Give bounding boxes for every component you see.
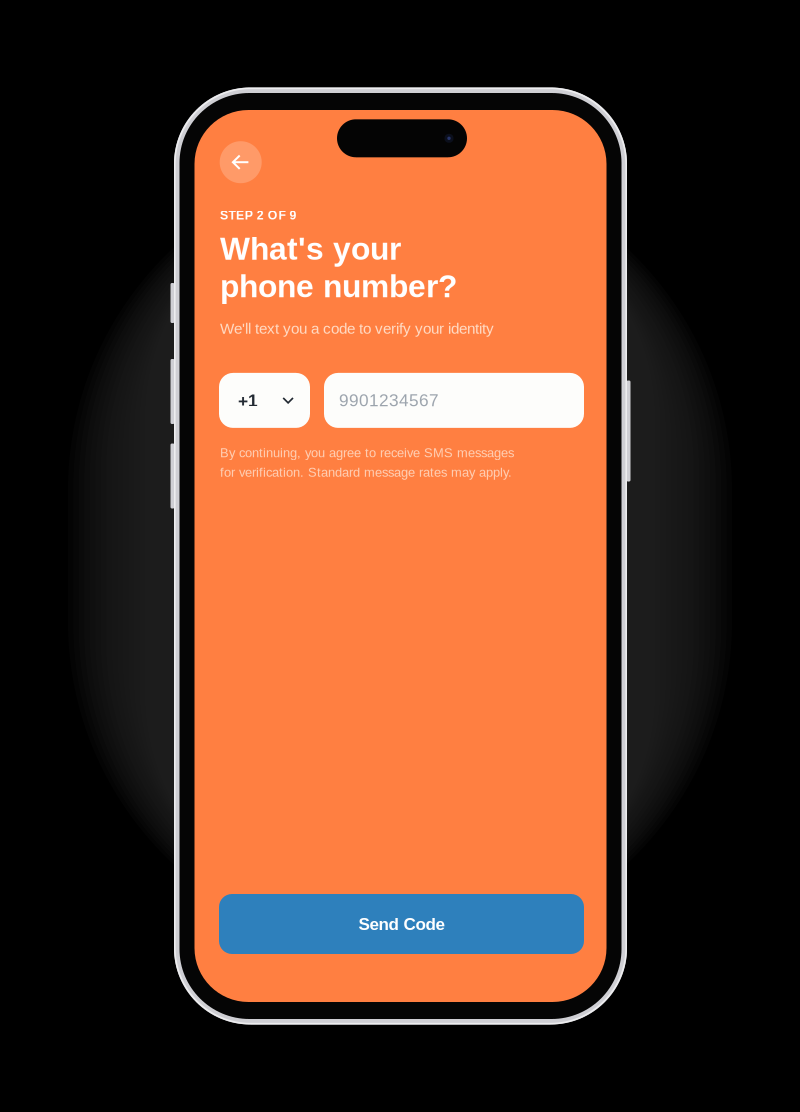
- staticText: for verification. Standard message rates…: [220, 465, 512, 479]
- button[interactable]: Phone number: [324, 373, 584, 428]
- staticText: STEP 2 OF 9: [220, 208, 296, 222]
- staticText: +1: [238, 391, 258, 410]
- staticText: We'll text you a code to verify your ide…: [220, 320, 494, 337]
- button[interactable]: Send Code: [219, 894, 584, 954]
- staticText: 9901234567: [339, 391, 439, 410]
- button[interactable]: Back: [220, 141, 262, 183]
- staticText: By continuing, you agree to receive SMS …: [220, 445, 514, 460]
- staticText: What's your: [220, 231, 401, 266]
- staticText: phone number?: [220, 269, 457, 304]
- staticText: Send Code: [358, 914, 444, 934]
- button[interactable]: Country code, +1: [219, 373, 310, 428]
